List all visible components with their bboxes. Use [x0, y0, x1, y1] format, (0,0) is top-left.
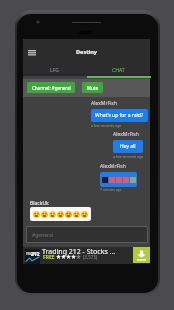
button[interactable]: LFG [23, 64, 86, 76]
button[interactable]: Channel: #general [27, 82, 75, 93]
button[interactable]: Open navigation drawer [23, 44, 41, 62]
staticText: Hey all [120, 143, 136, 150]
staticText: What's up for a raid? [95, 112, 144, 119]
button[interactable]: #general [26, 226, 148, 243]
staticText: CHAT [112, 67, 125, 74]
staticText: AlexMrFish [100, 163, 126, 170]
button[interactable] [23, 247, 150, 264]
button[interactable] [30, 207, 91, 221]
staticText: (3,573) [83, 254, 98, 260]
staticText: Trading 212 - Stocks ... [42, 247, 116, 257]
staticText: LFG [50, 67, 59, 74]
staticText: Mute [87, 85, 99, 91]
staticText: 7 minutes ago [100, 188, 122, 192]
staticText: a few seconds ago [113, 154, 144, 159]
staticText: a few seconds ago [91, 123, 122, 128]
button[interactable]: What's up for a raid? [91, 109, 148, 122]
staticText: Destiny [23, 48, 150, 55]
staticText: FREE [43, 254, 55, 261]
staticText: Channel: #general [32, 85, 71, 91]
button[interactable]: Install [133, 247, 150, 263]
button[interactable]: CHAT [86, 64, 150, 76]
staticText: AlexMrFish [91, 100, 117, 107]
staticText: TRADING [26, 252, 38, 255]
staticText: BlackUk [30, 200, 49, 207]
button[interactable] [100, 172, 137, 187]
button[interactable]: Mute [82, 82, 103, 93]
staticText: AlexMrFish [113, 131, 139, 138]
staticText: 212 [31, 251, 40, 258]
button[interactable]: Hey all [113, 140, 143, 153]
staticText: #general [32, 232, 54, 239]
